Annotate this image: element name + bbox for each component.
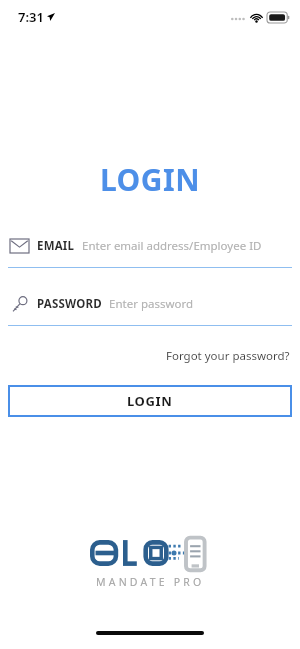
- staticText: LOGIN: [0, 159, 300, 200]
- button[interactable]: Password: [10, 290, 292, 318]
- staticText: LOGIN: [127, 392, 173, 410]
- staticText: MANDATE PRO: [96, 575, 205, 589]
- staticText: Enter email address/Employee ID: [82, 238, 262, 254]
- button[interactable]: Email: [10, 232, 292, 260]
- staticText: PASSWORD: [37, 296, 102, 312]
- button[interactable]: LOGIN: [8, 385, 292, 417]
- other: Email: [10, 239, 29, 253]
- staticText: Forgot your password?: [166, 348, 290, 364]
- other: Password: [10, 295, 29, 314]
- staticText: Enter password: [109, 296, 194, 312]
- button[interactable]: Forgot your password?: [164, 344, 292, 368]
- staticText: EMAIL: [37, 238, 75, 254]
- staticText: 7:31: [18, 8, 44, 26]
